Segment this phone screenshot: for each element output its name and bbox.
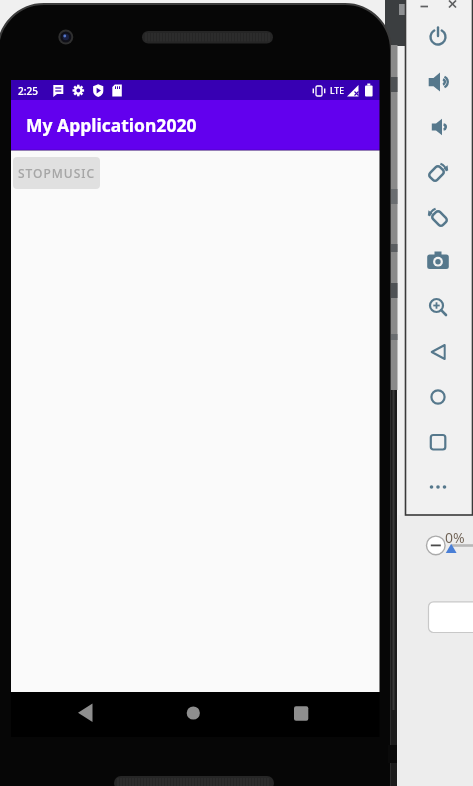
button[interactable] <box>70 698 100 728</box>
button[interactable] <box>424 158 452 186</box>
staticText: My Application2020 <box>26 113 197 137</box>
button[interactable]: STOPMUSIC <box>13 157 100 189</box>
button[interactable] <box>424 248 452 276</box>
staticText: LTE <box>330 85 344 97</box>
button[interactable] <box>424 113 452 141</box>
button[interactable] <box>424 473 452 501</box>
staticText: STOPMUSIC <box>18 165 96 181</box>
button[interactable] <box>424 203 452 231</box>
button[interactable] <box>424 68 452 96</box>
button[interactable] <box>424 23 452 51</box>
staticText: 2:25 <box>18 84 38 98</box>
button[interactable] <box>286 698 316 728</box>
button[interactable] <box>424 338 452 366</box>
button[interactable] <box>178 698 208 728</box>
button[interactable] <box>424 428 452 456</box>
button[interactable] <box>424 293 452 321</box>
button[interactable] <box>424 383 452 411</box>
staticText: 0% <box>445 528 465 547</box>
